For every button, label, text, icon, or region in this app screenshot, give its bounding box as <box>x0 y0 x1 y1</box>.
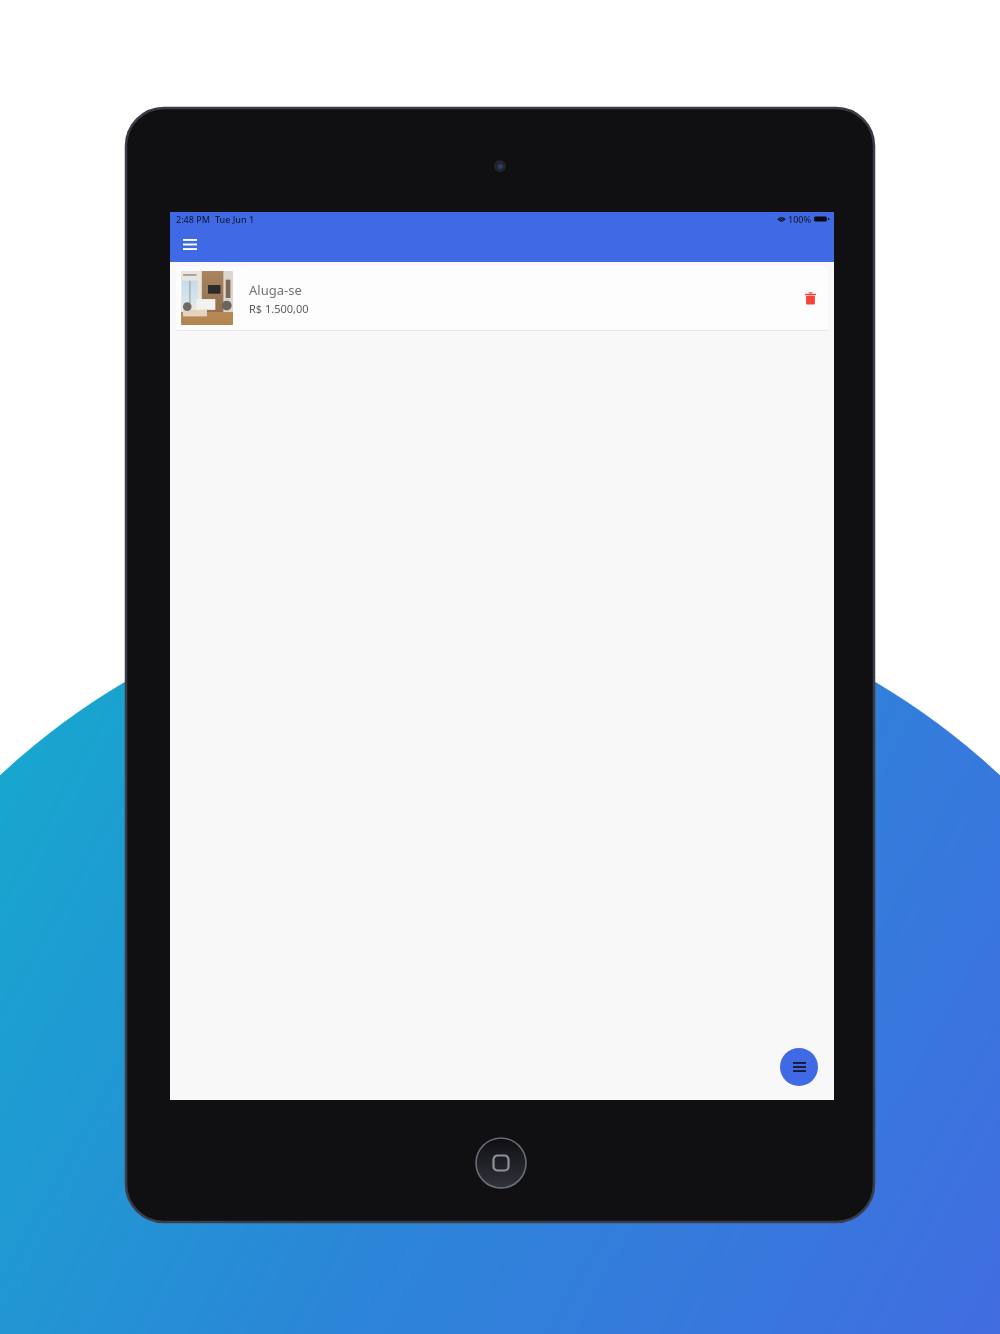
staticText: Aluga-se <box>249 281 302 299</box>
button[interactable]: Home <box>475 1137 527 1189</box>
button[interactable]: Delete <box>797 285 823 311</box>
button[interactable]: Menu actions <box>780 1048 818 1086</box>
button[interactable]: Aluga-se <box>176 266 828 330</box>
staticText: 2:48 PM <box>176 213 210 225</box>
staticText: Tue Jun 1 <box>215 213 255 225</box>
staticText: 100% <box>788 213 812 225</box>
staticText: R$ 1.500,00 <box>249 301 309 316</box>
button[interactable]: Open navigation menu <box>178 232 202 256</box>
